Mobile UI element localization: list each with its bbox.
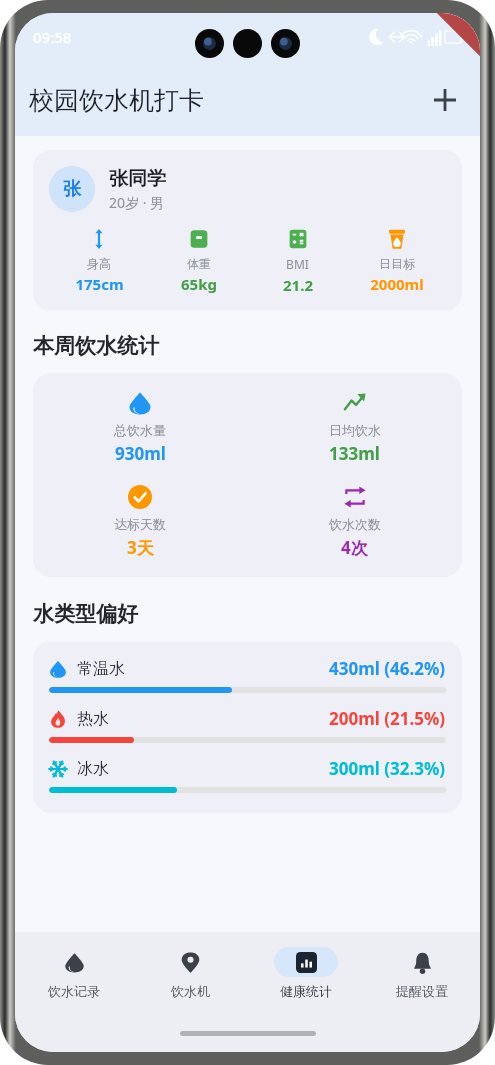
button[interactable]: 热水 <box>49 707 446 743</box>
staticText: 日目标 <box>379 256 415 271</box>
staticText: 200ml (21.5%) <box>329 707 446 730</box>
button[interactable]: 健康统计 <box>248 932 364 1014</box>
staticText: 校园饮水机打卡 <box>29 85 204 116</box>
staticText: 21.2 <box>283 275 313 295</box>
staticText: BMI <box>286 256 309 272</box>
staticText: 常温水 <box>77 659 125 679</box>
staticText: 张 <box>63 178 81 201</box>
staticText: 09:58 <box>33 27 72 47</box>
staticText: 日均饮水 <box>329 422 381 438</box>
button[interactable]: 张 <box>33 150 462 311</box>
staticText: 总饮水量 <box>114 422 166 438</box>
button[interactable]: 常温水 <box>49 657 446 693</box>
staticText: 133ml <box>329 442 380 465</box>
button[interactable]: 冰水 <box>49 757 446 793</box>
button[interactable]: 饮水机 <box>132 932 248 1014</box>
staticText: 4次 <box>341 536 368 559</box>
staticText: 热水 <box>77 709 109 729</box>
button[interactable]: 常温水 <box>33 641 462 813</box>
staticText: 达标天数 <box>114 516 166 532</box>
staticText: 饮水机 <box>171 983 210 999</box>
staticText: 300ml (32.3%) <box>329 757 446 780</box>
staticText: 430ml (46.2%) <box>329 657 446 680</box>
staticText: 体重 <box>187 256 211 271</box>
staticText: 身高 <box>87 256 111 271</box>
staticText: 930ml <box>115 442 166 465</box>
staticText: 饮水记录 <box>48 983 100 999</box>
staticText: 本周饮水统计 <box>33 333 159 359</box>
button[interactable]: 饮水记录 <box>15 932 132 1014</box>
staticText: 175cm <box>75 274 124 294</box>
staticText: 健康统计 <box>280 983 332 999</box>
staticText: 20岁 · 男 <box>109 193 165 212</box>
staticText: 65kg <box>181 274 217 294</box>
staticText: 2000ml <box>370 274 424 294</box>
staticText: 冰水 <box>77 759 109 779</box>
staticText: 提醒设置 <box>396 983 448 999</box>
staticText: 3天 <box>127 536 154 559</box>
staticText: 张同学 <box>109 167 166 191</box>
button[interactable]: 总饮水量 <box>33 373 462 577</box>
staticText: 水类型偏好 <box>33 601 138 627</box>
button[interactable]: Add drink record <box>422 77 468 123</box>
staticText: 饮水次数 <box>329 516 381 532</box>
button[interactable]: 提醒设置 <box>364 932 480 1014</box>
